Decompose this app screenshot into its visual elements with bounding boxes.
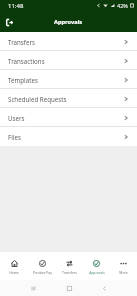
button[interactable]: Transfers: [0, 32, 137, 51]
staticText: Scheduled Requests: [8, 95, 67, 103]
button[interactable]: Recent apps: [27, 282, 39, 294]
staticText: Positive Pay: [33, 270, 52, 275]
button[interactable]: Approvals: [83, 252, 110, 280]
staticText: Templates: [8, 76, 38, 84]
staticText: Files: [8, 133, 21, 141]
button[interactable]: More: [110, 252, 137, 280]
staticText: Approvals: [54, 18, 83, 26]
staticText: Home: [9, 270, 19, 275]
button[interactable]: Files: [0, 127, 137, 146]
button[interactable]: Transactions: [0, 51, 137, 70]
staticText: 42%: [117, 2, 128, 9]
button[interactable]: Transfers: [56, 252, 83, 280]
button[interactable]: Log out: [0, 13, 18, 31]
button[interactable]: Positive Pay: [28, 252, 56, 280]
button[interactable]: Scheduled Requests: [0, 89, 137, 108]
button[interactable]: Back: [98, 282, 110, 294]
button[interactable]: Users: [0, 108, 137, 127]
staticText: Transfers: [62, 270, 77, 275]
staticText: Transactions: [8, 57, 45, 65]
button[interactable]: Templates: [0, 70, 137, 89]
button[interactable]: Home: [63, 282, 75, 294]
staticText: 11:48: [8, 2, 24, 10]
button[interactable]: Home: [0, 252, 28, 280]
staticText: More: [119, 270, 128, 275]
staticText: Transfers: [8, 38, 35, 46]
staticText: Users: [8, 114, 25, 122]
staticText: Approvals: [89, 270, 105, 275]
